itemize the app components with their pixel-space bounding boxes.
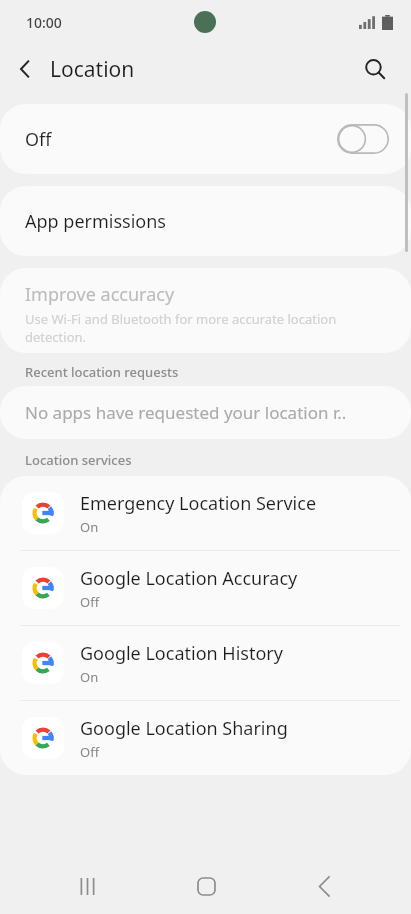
staticText: Location <box>50 55 135 84</box>
button[interactable]: Home <box>174 858 238 914</box>
button[interactable]: Search <box>351 45 399 93</box>
button[interactable]: Google Location History <box>0 626 411 700</box>
button[interactable]: Back <box>292 858 356 914</box>
button[interactable]: Emergency Location Service <box>0 476 411 550</box>
staticText: Emergency Location Service <box>80 491 317 516</box>
button[interactable]: Google Location Accuracy <box>0 551 411 625</box>
staticText: Recent location requests <box>25 363 179 381</box>
staticText: No apps have requested your location r.. <box>25 401 347 424</box>
staticText: Off <box>80 593 100 611</box>
staticText: 10:00 <box>26 13 62 32</box>
staticText: Off <box>80 743 100 761</box>
button[interactable]: Off <box>0 104 411 174</box>
staticText: Google Location Sharing <box>80 716 288 741</box>
staticText: Use Wi-Fi and Bluetooth for more accurat… <box>25 310 389 346</box>
button[interactable]: Improve accuracy <box>0 268 411 353</box>
staticText: App permissions <box>25 209 166 234</box>
button[interactable]: Recent apps <box>55 858 119 914</box>
button[interactable]: Location toggle, off <box>337 124 389 154</box>
button[interactable]: App permissions <box>0 186 411 256</box>
staticText: Google Location History <box>80 641 283 666</box>
button[interactable]: Back <box>0 44 50 94</box>
staticText: On <box>80 518 99 536</box>
staticText: Off <box>25 127 52 152</box>
staticText: Improve accuracy <box>25 282 175 307</box>
button[interactable]: Google Location Sharing <box>0 701 411 775</box>
staticText: Location services <box>25 451 132 469</box>
button[interactable]: No apps have requested your location r.. <box>0 386 411 439</box>
staticText: On <box>80 668 99 686</box>
staticText: Google Location Accuracy <box>80 566 298 591</box>
